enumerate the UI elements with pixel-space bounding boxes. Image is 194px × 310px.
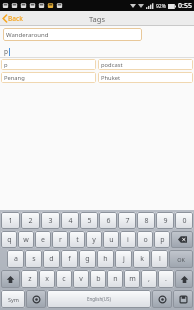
staticText: 0:55 (178, 1, 192, 11)
button[interactable]: podcast (98, 59, 193, 70)
staticText: i (127, 235, 129, 245)
staticText: h (103, 254, 108, 264)
button[interactable]: p (154, 231, 170, 248)
button[interactable]: Penang (1, 72, 96, 83)
staticText: Back (8, 14, 23, 23)
staticText: x (45, 274, 49, 284)
button[interactable]: Emoji (26, 290, 46, 308)
staticText: d (49, 254, 54, 264)
button[interactable]: d (43, 250, 60, 268)
button[interactable]: OK (169, 250, 193, 268)
staticText: 3 (48, 216, 53, 226)
staticText: q (7, 235, 12, 245)
button[interactable]: n (107, 270, 123, 288)
button[interactable]: Save (173, 290, 193, 308)
button[interactable]: 5 (80, 212, 98, 229)
staticText: 1 (8, 216, 13, 226)
button[interactable]: k (133, 250, 150, 268)
button[interactable]: 6 (99, 212, 117, 229)
button[interactable]: 7 (118, 212, 136, 229)
staticText: f (68, 254, 71, 264)
staticText: 0 (182, 216, 187, 226)
button[interactable]: y (86, 231, 102, 248)
button[interactable]: Wanderaround (3, 28, 142, 41)
staticText: v (79, 274, 83, 284)
button[interactable]: g (79, 250, 96, 268)
button[interactable]: Back (0, 12, 26, 25)
button[interactable]: . (158, 270, 174, 288)
staticText: Penang (4, 74, 25, 82)
button[interactable]: 3 (41, 212, 60, 229)
staticText: t (76, 235, 79, 245)
button[interactable]: v (73, 270, 89, 288)
button[interactable]: 8 (137, 212, 155, 229)
staticText: Sym (8, 296, 19, 303)
staticText: 4 (68, 216, 73, 226)
button[interactable]: Shift (1, 270, 20, 288)
staticText: l (159, 254, 161, 264)
button[interactable]: o (137, 231, 153, 248)
button[interactable]: p (0, 46, 194, 57)
staticText: Phuket (101, 74, 121, 82)
button[interactable]: Shift right (175, 270, 193, 288)
staticText: 2 (28, 216, 33, 226)
staticText: , (148, 274, 150, 284)
button[interactable]: h (97, 250, 114, 268)
staticText: r (59, 235, 62, 245)
button[interactable]: i (120, 231, 136, 248)
button[interactable]: Backspace (171, 231, 193, 248)
button[interactable]: j (115, 250, 132, 268)
button[interactable]: , (141, 270, 157, 288)
button[interactable]: l (151, 250, 168, 268)
staticText: 7 (125, 216, 130, 226)
staticText: k (140, 254, 144, 264)
staticText: 5 (87, 216, 92, 226)
button[interactable]: r (52, 231, 68, 248)
staticText: w (23, 235, 29, 245)
button[interactable]: Phuket (98, 72, 193, 83)
staticText: English(US) (87, 296, 111, 302)
button[interactable]: q (1, 231, 17, 248)
button[interactable]: z (21, 270, 38, 288)
button[interactable]: p (1, 59, 96, 70)
staticText: n (113, 274, 118, 284)
staticText: y (92, 235, 96, 245)
button[interactable]: 1 (1, 212, 20, 229)
button[interactable]: 0 (175, 212, 193, 229)
button[interactable]: a (7, 250, 24, 268)
button[interactable]: Voice input (152, 290, 172, 308)
staticText: 8 (144, 216, 149, 226)
button[interactable]: x (39, 270, 55, 288)
staticText: 92% (156, 3, 166, 10)
staticText: a (14, 254, 18, 264)
staticText: s (32, 254, 36, 264)
button[interactable]: m (124, 270, 140, 288)
staticText: b (96, 274, 101, 284)
button[interactable]: 9 (156, 212, 174, 229)
button[interactable]: w (18, 231, 34, 248)
button[interactable]: b (90, 270, 106, 288)
button[interactable]: s (25, 250, 42, 268)
button[interactable]: Sym (1, 290, 25, 308)
button[interactable]: English(US) (47, 290, 151, 308)
button[interactable]: 4 (61, 212, 79, 229)
staticText: g (85, 254, 90, 264)
button[interactable]: t (69, 231, 85, 248)
staticText: c (62, 274, 66, 284)
staticText: z (28, 274, 32, 284)
button[interactable]: f (61, 250, 78, 268)
button[interactable]: c (56, 270, 72, 288)
button[interactable]: 2 (21, 212, 40, 229)
staticText: m (129, 274, 136, 284)
button[interactable]: u (103, 231, 119, 248)
staticText: podcast (101, 61, 123, 69)
staticText: Wanderaround (6, 31, 49, 39)
staticText: 9 (163, 216, 168, 226)
staticText: p (4, 61, 8, 69)
staticText: p (160, 235, 165, 245)
button[interactable]: e (35, 231, 51, 248)
staticText: e (41, 235, 45, 245)
staticText: Tags (89, 14, 105, 24)
staticText: u (109, 235, 114, 245)
staticText: p (4, 47, 8, 56)
